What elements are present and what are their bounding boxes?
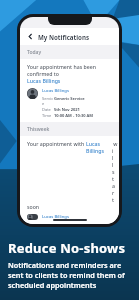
staticText: Lucas Billings [42, 214, 69, 220]
staticText: Reduce No-shows [8, 239, 126, 257]
staticText: Notifications and reminders are sent to … [8, 260, 133, 290]
button[interactable]: Your appointment has been confirmed to [20, 59, 119, 122]
staticText: Date [42, 107, 54, 112]
staticText: Lucas Billings [86, 140, 112, 154]
button[interactable]: Back [26, 32, 35, 41]
staticText: Lucas Billings [42, 88, 69, 94]
button[interactable]: Your appointment with [20, 136, 119, 224]
staticText: Service [42, 96, 54, 106]
staticText: Thisweek [27, 126, 50, 133]
staticText: 5th Nov 2021 [54, 107, 80, 112]
staticText: Today [27, 49, 42, 56]
staticText: Your appointment with [27, 140, 86, 147]
staticText: Time [42, 113, 54, 118]
staticText: My Notifications [38, 33, 90, 41]
staticText: Your appointment has been confirmed to [27, 63, 112, 77]
staticText: Lucas Billings [27, 77, 61, 84]
staticText: soon [27, 203, 40, 210]
staticText: 10:00 AM - 10:30 AM [54, 113, 94, 118]
staticText: Generic Service [54, 96, 85, 101]
